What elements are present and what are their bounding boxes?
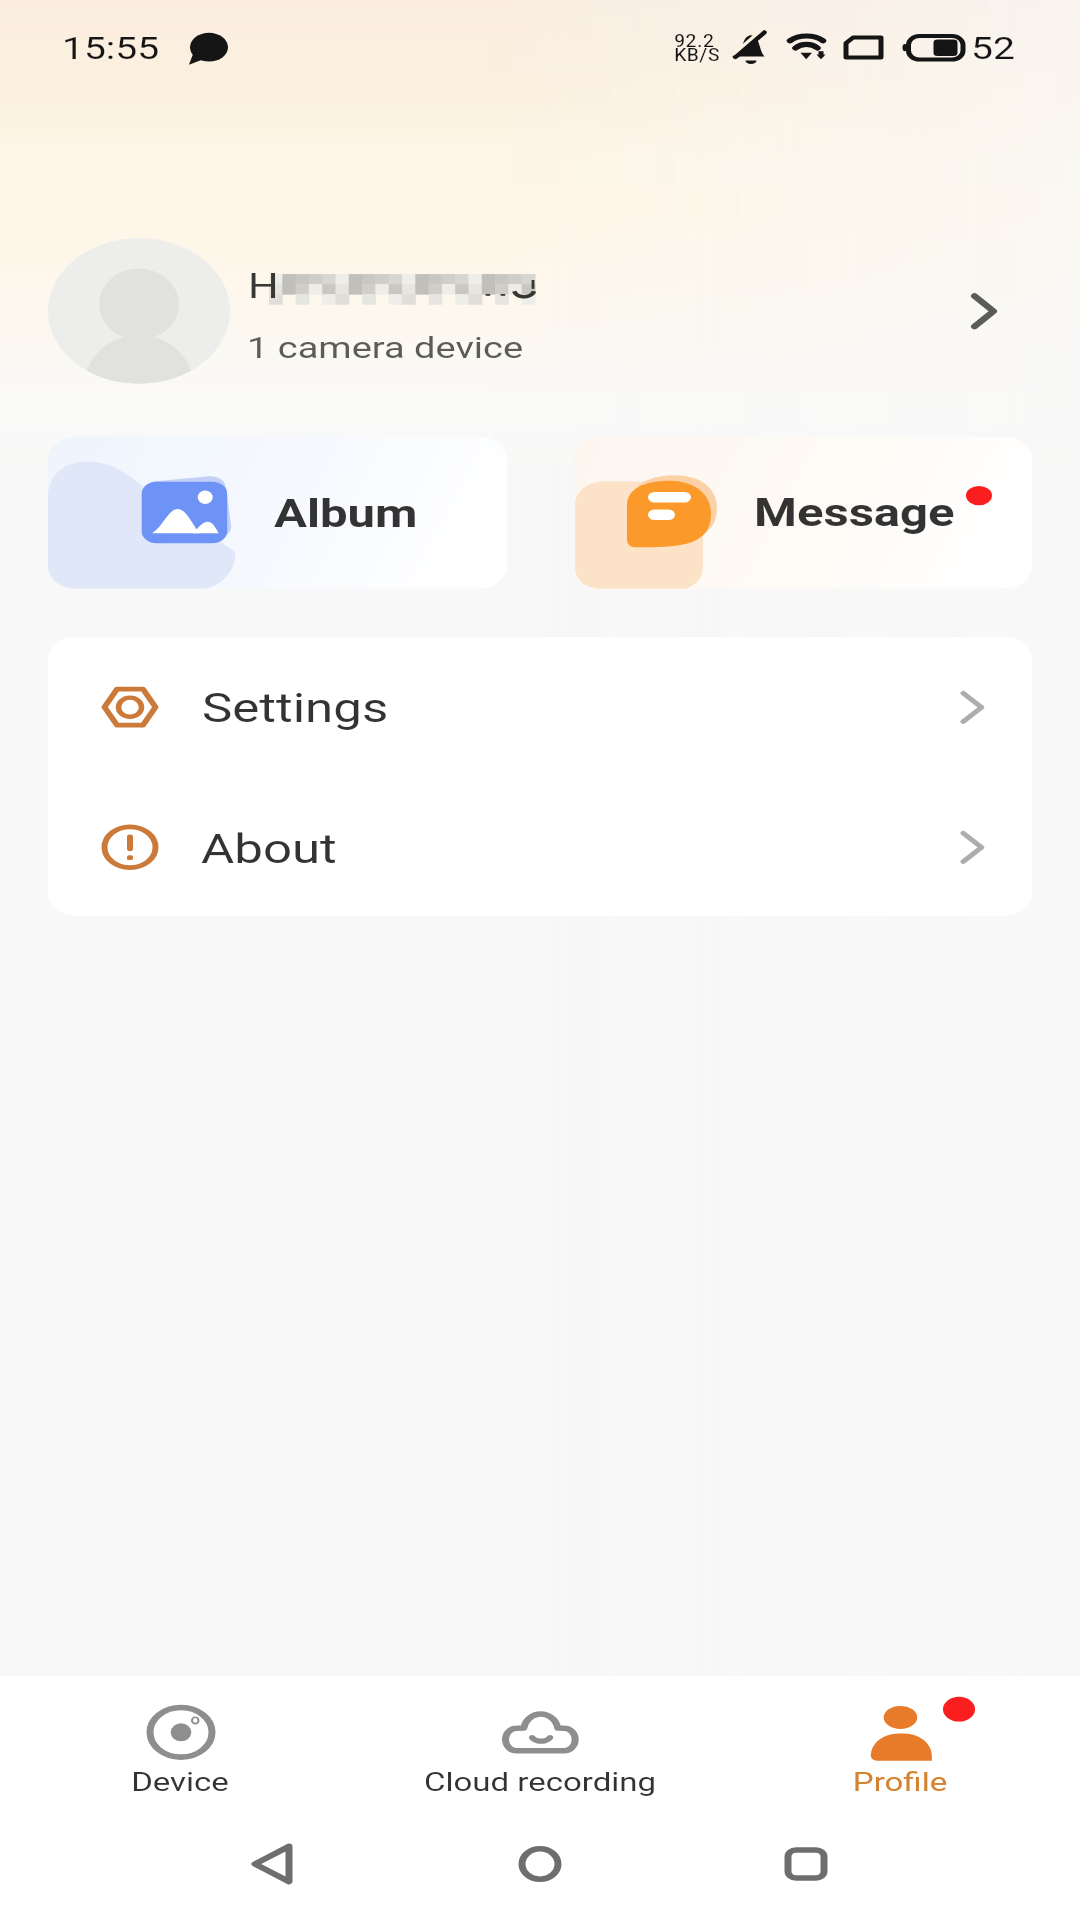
button[interactable]: Home: [448, 1828, 632, 1900]
staticText: H: [248, 266, 279, 306]
staticText: About: [201, 826, 337, 874]
button[interactable]: About: [48, 777, 1032, 916]
staticText: Profile: [720, 1766, 1080, 1798]
button[interactable]: Back: [180, 1828, 364, 1900]
button[interactable]: Device: [0, 1676, 360, 1832]
staticText: 52: [971, 30, 1015, 67]
button[interactable]: Message: [573, 437, 1032, 589]
staticText: Device: [0, 1766, 360, 1798]
button[interactable]: Album: [48, 437, 507, 589]
button[interactable]: Recent apps: [714, 1828, 898, 1900]
staticText: 92.2: [674, 30, 715, 52]
button[interactable]: Settings: [48, 637, 1032, 777]
staticText: 15:55: [62, 30, 160, 67]
staticText: 1 camera device: [247, 330, 524, 366]
staticText: KB/S: [674, 44, 720, 66]
button[interactable]: H: [24, 232, 1056, 392]
staticText: Message: [754, 490, 955, 536]
button[interactable]: Profile: [720, 1676, 1080, 1832]
staticText: Settings: [202, 685, 389, 733]
staticText: Album: [274, 491, 418, 537]
button[interactable]: Cloud recording: [360, 1676, 720, 1832]
staticText: Cloud recording: [360, 1766, 720, 1798]
